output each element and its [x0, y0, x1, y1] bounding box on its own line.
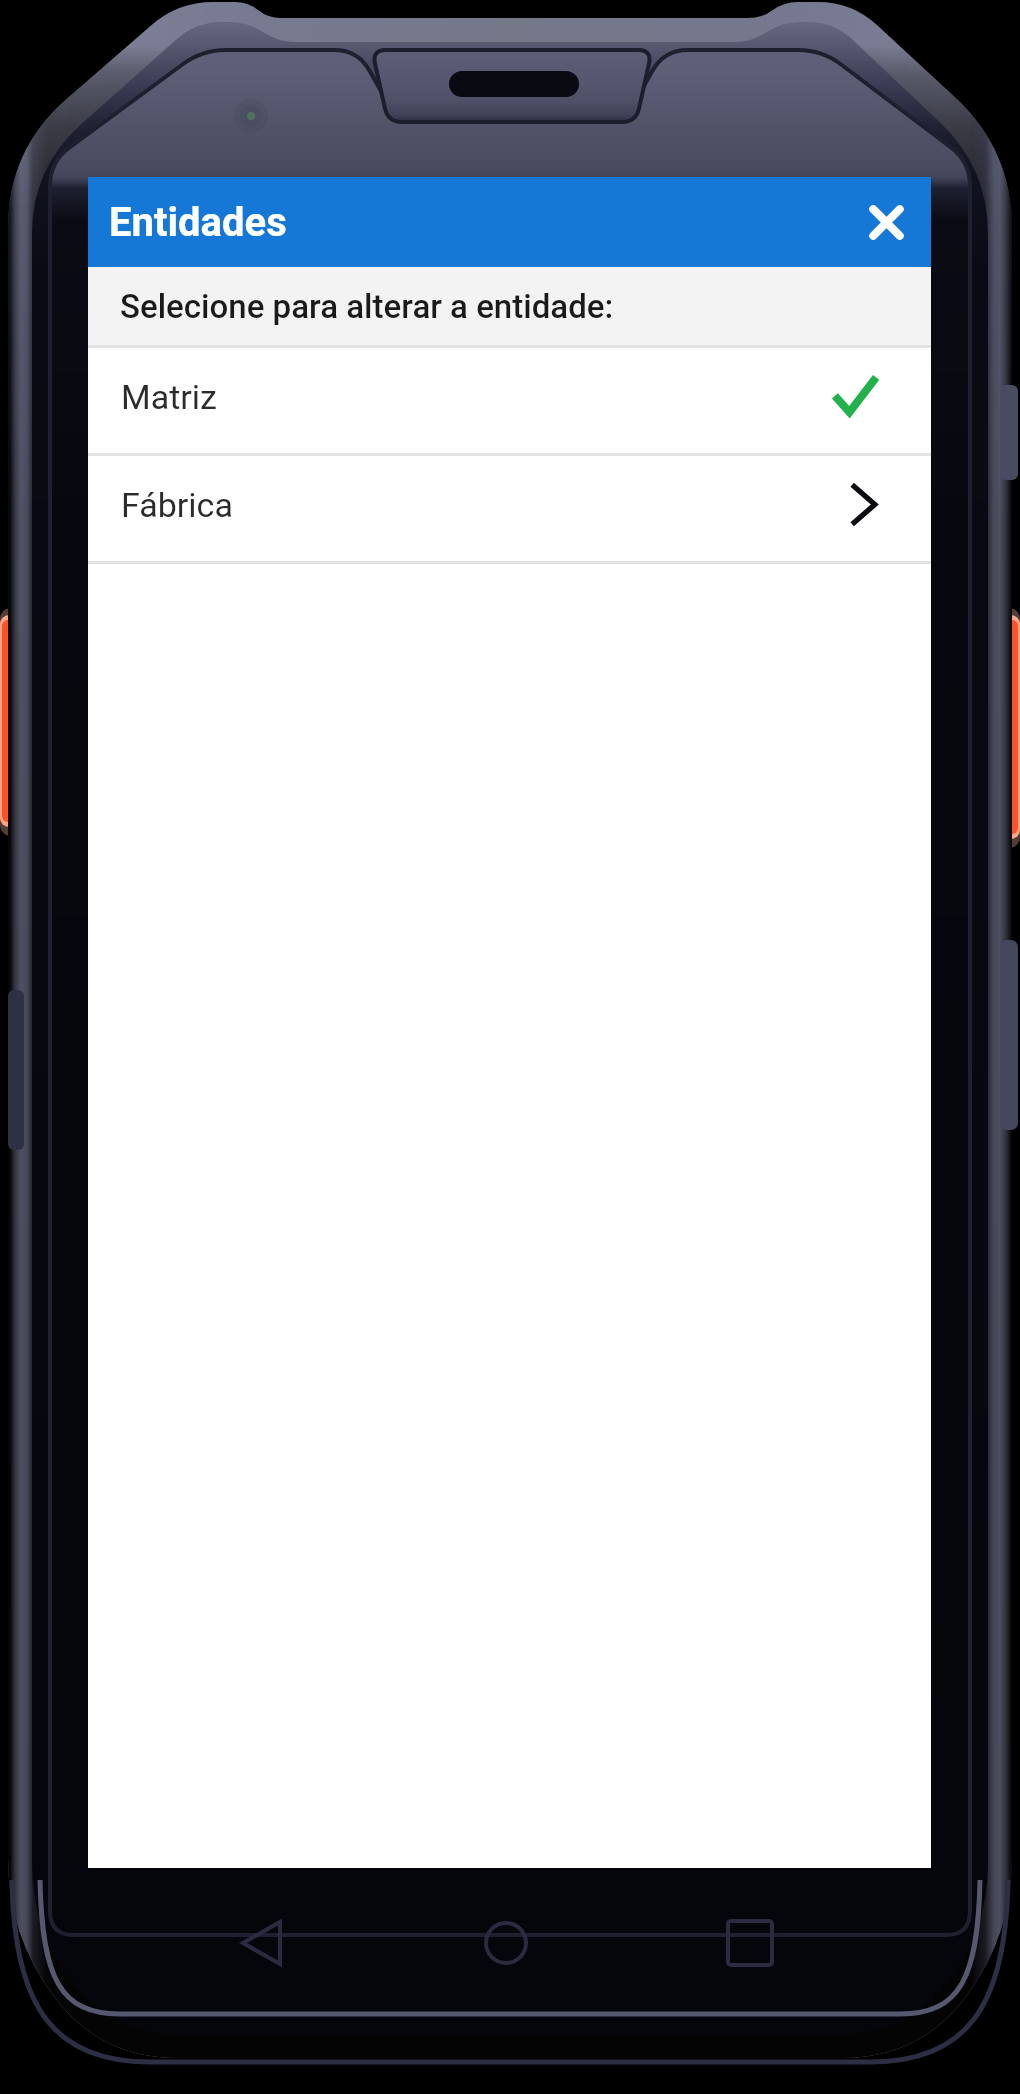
- staticText: Selecione para alterar a entidade:: [120, 287, 614, 326]
- staticText: Entidades: [109, 199, 287, 246]
- button[interactable]: Close: [855, 191, 917, 253]
- button[interactable]: Fábrica: [88, 456, 931, 561]
- button[interactable]: Matriz: [88, 348, 931, 453]
- staticText: Matriz: [121, 377, 217, 417]
- staticText: Fábrica: [121, 485, 233, 525]
